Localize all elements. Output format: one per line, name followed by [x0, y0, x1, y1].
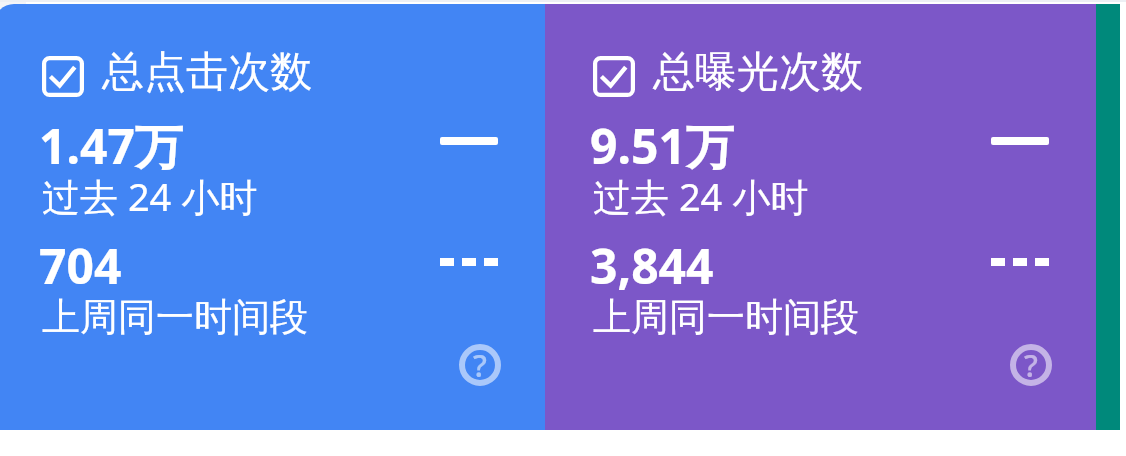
staticText: 上周同一时间段	[42, 293, 308, 341]
staticText: ?	[473, 344, 487, 386]
staticText: 上周同一时间段	[593, 293, 859, 341]
staticText: 704	[39, 233, 122, 298]
button[interactable]: 总曝光次数	[545, 4, 1096, 430]
button[interactable]: 总点击次数	[0, 4, 545, 430]
staticText: 3,844	[590, 233, 714, 298]
staticText: 1.47万	[39, 113, 183, 179]
staticText: ?	[1024, 344, 1038, 386]
staticText: 总点击次数	[102, 46, 312, 99]
staticText: 过去 24 小时	[593, 170, 809, 222]
staticText: 过去 24 小时	[42, 170, 258, 222]
staticText: 总曝光次数	[653, 46, 863, 99]
button[interactable]: ?	[459, 344, 501, 386]
button[interactable]: ?	[1010, 344, 1052, 386]
staticText: 9.51万	[590, 113, 734, 179]
